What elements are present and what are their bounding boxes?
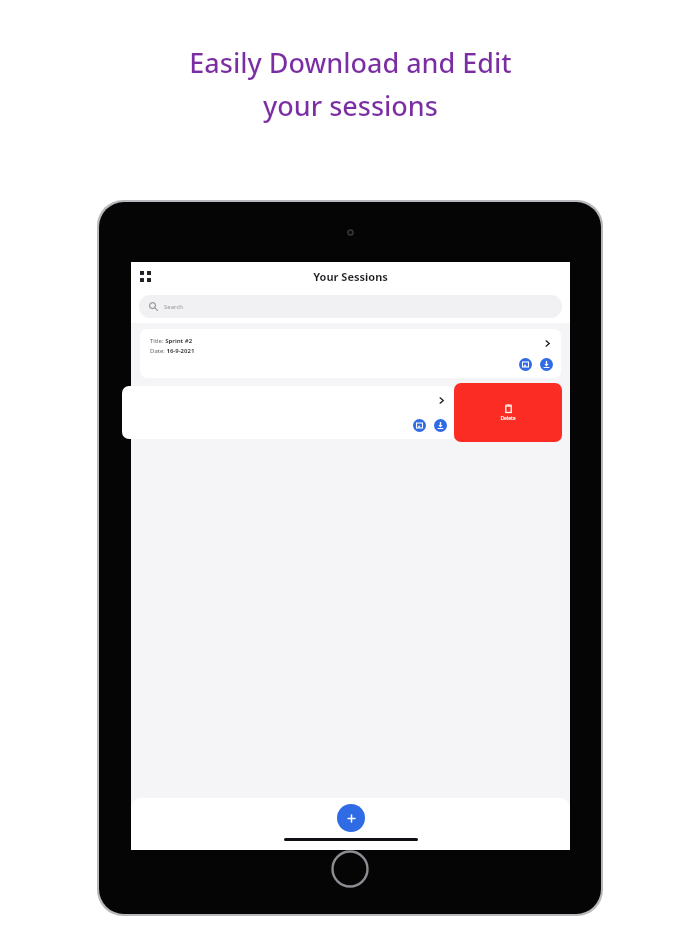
button[interactable]: Download xyxy=(434,419,447,432)
staticText: Title: Sprint #2 xyxy=(150,337,193,345)
button[interactable]: Open session xyxy=(541,337,553,349)
staticText: Your Sessions xyxy=(313,269,388,284)
staticText: Search xyxy=(164,303,183,311)
button[interactable]: Title: Sprint #2 xyxy=(140,329,561,378)
button[interactable]: Download xyxy=(540,358,553,371)
button[interactable]: Preview xyxy=(519,358,532,371)
staticText: your sessions xyxy=(263,87,438,124)
button[interactable]: Delete xyxy=(454,383,562,442)
button[interactable]: Add session xyxy=(337,804,365,832)
staticText: Delete xyxy=(500,415,516,422)
button[interactable]: Open session xyxy=(122,386,455,439)
staticText: Easily Download and Edit xyxy=(189,44,512,81)
button[interactable]: Search xyxy=(139,295,562,318)
button[interactable]: Preview xyxy=(413,419,426,432)
button[interactable]: Menu xyxy=(135,266,155,286)
button[interactable]: Open session xyxy=(435,394,447,406)
staticText: Date: 16-9-2021 xyxy=(150,347,195,355)
